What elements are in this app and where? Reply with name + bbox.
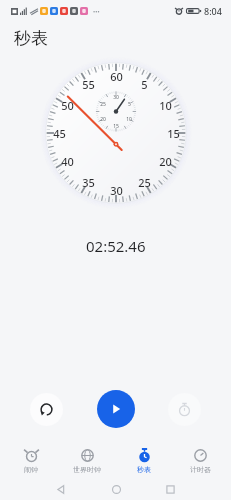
staticText: 世界时钟 <box>73 465 101 474</box>
staticText: 20 <box>100 116 106 123</box>
staticText: 25 <box>100 101 106 108</box>
staticText: 30 <box>113 94 119 101</box>
staticText: 5 <box>128 101 131 108</box>
button[interactable]: 秒表 <box>118 446 170 476</box>
button[interactable]: 世界时钟 <box>61 446 113 476</box>
staticText: 40 <box>61 154 74 169</box>
staticText: 闹钟 <box>24 465 38 474</box>
button[interactable]: 闹钟 <box>5 446 57 476</box>
staticText: 25 <box>138 175 151 190</box>
button[interactable]: Reset <box>30 393 63 426</box>
staticText: 10 <box>126 116 132 123</box>
staticText: 15 <box>167 126 180 141</box>
button[interactable]: Lap <box>168 393 201 426</box>
button[interactable]: Home <box>107 480 125 498</box>
staticText: 5 <box>141 77 148 92</box>
staticText: 10 <box>159 98 172 113</box>
staticText: 20 <box>159 154 172 169</box>
staticText: 秒表 <box>137 465 151 474</box>
button[interactable]: Back <box>52 480 70 498</box>
staticText: 02:52.46 <box>86 236 146 256</box>
staticText: 8:04 <box>204 5 222 17</box>
staticText: 55 <box>82 77 95 92</box>
staticText: 秒表 <box>14 28 48 49</box>
staticText: 60 <box>110 69 123 84</box>
staticText: 45 <box>53 126 66 141</box>
button[interactable]: 计时器 <box>174 446 226 476</box>
staticText: 35 <box>82 175 95 190</box>
staticText: 计时器 <box>190 465 211 474</box>
button[interactable]: Start <box>97 390 135 428</box>
button[interactable]: Recents <box>161 480 179 498</box>
staticText: 15 <box>113 123 119 130</box>
staticText: 30 <box>110 183 123 198</box>
staticText: 50 <box>61 98 74 113</box>
